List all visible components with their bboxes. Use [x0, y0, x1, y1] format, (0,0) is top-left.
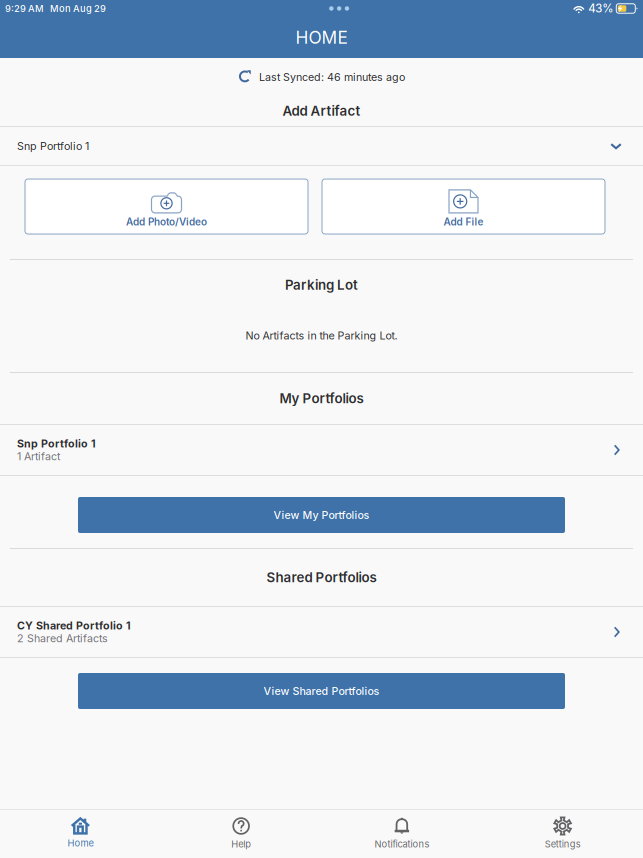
staticText: Add Artifact — [282, 103, 360, 119]
staticText: No Artifacts in the Parking Lot. — [245, 329, 397, 342]
button[interactable]: Help — [161, 809, 322, 858]
staticText: View Shared Portfolios — [263, 684, 379, 697]
staticText: Last Synced: 46 minutes ago — [259, 70, 405, 83]
staticText: CY Shared Portfolio 1 — [17, 619, 131, 632]
staticText: 2 Shared Artifacts — [17, 632, 108, 645]
staticText: Notifications — [374, 838, 429, 850]
staticText: Shared Portfolios — [266, 569, 376, 585]
staticText: My Portfolios — [279, 390, 363, 406]
button[interactable]: Home — [0, 809, 161, 858]
button[interactable]: Settings — [482, 809, 643, 858]
staticText: Snp Portfolio 1 — [17, 139, 89, 152]
staticText: Home — [67, 837, 93, 849]
staticText: 9:29 AM — [5, 3, 44, 14]
staticText: Add Photo/Video — [126, 216, 207, 228]
button[interactable]: View My Portfolios — [78, 497, 565, 533]
button[interactable]: Add Photo/Video — [25, 179, 308, 234]
button[interactable]: Notifications — [321, 809, 482, 858]
staticText: 43% — [585, 2, 616, 15]
button[interactable]: Snp Portfolio 1 — [0, 425, 643, 475]
staticText: View My Portfolios — [273, 508, 369, 521]
staticText: HOME — [295, 27, 347, 48]
staticText: Snp Portfolio 1 — [17, 437, 96, 450]
button[interactable]: View Shared Portfolios — [78, 673, 565, 709]
staticText: Help — [231, 838, 251, 850]
staticText: Settings — [545, 838, 581, 850]
staticText: Add File — [443, 216, 483, 228]
staticText: 1 Artifact — [17, 450, 60, 463]
button[interactable]: Snp Portfolio 1 — [0, 127, 643, 165]
staticText: Mon Aug 29 — [44, 3, 106, 14]
button[interactable]: Add File — [322, 179, 605, 234]
staticText: Parking Lot — [285, 277, 358, 293]
button[interactable]: CY Shared Portfolio 1 — [0, 607, 643, 657]
